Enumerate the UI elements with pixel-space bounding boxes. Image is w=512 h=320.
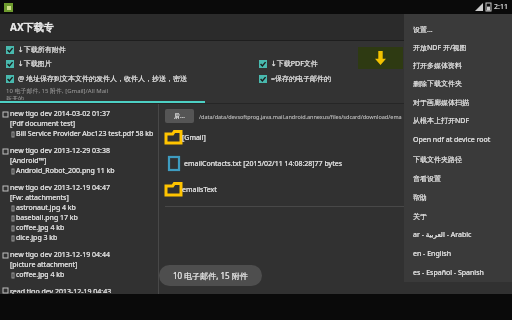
staticText: 打开多媒体资料 — [413, 61, 462, 70]
button[interactable]: Up — [165, 109, 194, 123]
staticText: ↓下载所有附件 — [18, 45, 66, 54]
staticText: emailsText — [182, 185, 217, 195]
staticText: new tigo dev 2013-12-19 04:44 — [10, 250, 110, 260]
staticText: 关于 — [413, 212, 427, 221]
staticText: 设置... — [413, 25, 433, 35]
staticText: 下载文件夹路径 — [413, 155, 462, 164]
button[interactable]: 下载文件夹路径 — [413, 150, 512, 168]
button[interactable]: 开放NDF 开/视图 — [413, 39, 512, 56]
staticText: new tigo dev 2013-12-19 04:47 — [10, 183, 110, 193]
staticText: en - English — [413, 249, 451, 259]
staticText: 删除下载文件夹 — [413, 79, 462, 88]
staticText: 10 电子邮件, 15 附件, [Gmail]/All Mail — [6, 87, 109, 95]
button[interactable]: Open ndf at device root — [413, 131, 512, 149]
staticText: 音看设置 — [413, 174, 441, 183]
button[interactable]: 设置... — [413, 21, 512, 38]
button[interactable]: emailContacts.txt [2015/02/11 14:08:28]7… — [159, 155, 512, 172]
staticText: read tigo dev 2013-12-19 04:43 — [10, 287, 112, 293]
button[interactable]: 关于 — [413, 207, 512, 225]
staticText: Android_Robot_200.png 11 kb — [16, 166, 115, 176]
staticText: =保存的电子邮件的 — [271, 74, 332, 84]
button[interactable]: 从根本上打开NDF — [413, 112, 512, 130]
staticText: [Fw: attachments] — [10, 193, 69, 203]
staticText: 2:11 — [494, 2, 508, 12]
staticText: coffee.jpg 4 kb — [16, 270, 65, 280]
staticText: [Android™] — [10, 156, 47, 166]
staticText: ↓下载图片 — [18, 59, 52, 68]
button[interactable]: [Gmail] — [159, 129, 512, 146]
staticText: 从根本上打开NDF — [413, 116, 470, 126]
staticText: ar - العربية - Arabic — [413, 230, 472, 240]
button[interactable]: new tigo dev 2013-12-19 04:47 — [3, 182, 158, 244]
button[interactable]: ↓下载图片 — [6, 58, 259, 69]
staticText: 对于画廊媒体扫描 — [413, 98, 469, 107]
button[interactable]: read tigo dev 2013-12-19 04:43 — [3, 286, 158, 294]
button[interactable]: 帮助 — [413, 188, 512, 206]
staticText: 开放NDF 开/视图 — [413, 43, 467, 53]
button[interactable]: new tigo dev 2013-12-29 03:38 — [3, 145, 158, 177]
staticText: 新开的 — [6, 95, 24, 100]
button[interactable]: @ 地址保存到文本文件的发件人，收件人，抄送，密送 — [6, 73, 259, 85]
staticText: new tigo dev 2014-03-02 01:37 — [10, 109, 110, 119]
staticText: 后... — [174, 112, 185, 120]
button[interactable]: ↓下载所有附件 — [6, 44, 66, 55]
button[interactable]: 打开多媒体资料 — [413, 57, 512, 74]
staticText: 帮助 — [413, 193, 427, 202]
staticText: coffee.jpg 4 kb — [16, 223, 65, 233]
staticText: [picture attachment] — [10, 260, 78, 270]
button[interactable]: emailsText — [159, 181, 512, 198]
staticText: [Gmail] — [182, 133, 206, 143]
button[interactable]: es - Español - Spanish — [413, 264, 512, 282]
staticText: AX下载专 — [10, 20, 54, 34]
staticText: 10 电子邮件, 15 附件 — [173, 270, 248, 281]
staticText: baseball.png 17 kb — [16, 213, 78, 223]
staticText: emailContacts.txt [2015/02/11 14:08:28]7… — [184, 159, 342, 169]
button[interactable]: 删除下载文件夹 — [413, 75, 512, 92]
button[interactable]: 对于画廊媒体扫描 — [413, 93, 512, 111]
staticText: Bill Service Provider Abc123 test.pdf 58… — [16, 129, 154, 139]
button[interactable]: Download — [358, 47, 403, 69]
staticText: ↓下载PDF文件 — [271, 59, 318, 69]
button[interactable]: 10 电子邮件, 15 附件 — [159, 265, 262, 286]
button[interactable]: new tigo dev 2013-12-19 04:44 — [3, 249, 158, 281]
staticText: astronaut.jpg 4 kb — [16, 203, 76, 213]
staticText: Open ndf at device root — [413, 135, 491, 145]
button[interactable]: 音看设置 — [413, 169, 512, 187]
button[interactable]: ↓下载PDF文件 — [259, 58, 512, 70]
staticText: /data/data/devsoftprog.java.mail.android… — [199, 113, 402, 120]
staticText: dice.jpg 3 kb — [16, 233, 58, 243]
staticText: es - Español - Spanish — [413, 268, 484, 278]
button[interactable]: =保存的电子邮件的 — [259, 73, 512, 85]
staticText: new tigo dev 2013-12-29 03:38 — [10, 146, 110, 156]
staticText: [Pdf document test] — [10, 119, 76, 129]
button[interactable]: new tigo dev 2014-03-02 01:37 — [3, 108, 158, 140]
staticText: @ 地址保存到文本文件的发件人，收件人，抄送，密送 — [18, 74, 188, 84]
button[interactable]: en - English — [413, 245, 512, 263]
button[interactable]: ar - العربية - Arabic — [413, 226, 512, 244]
